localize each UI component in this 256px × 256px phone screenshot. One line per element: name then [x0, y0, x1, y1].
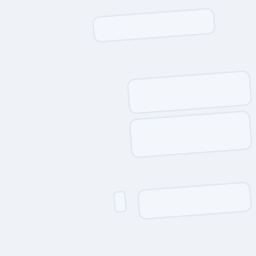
button[interactable]: Message 3 — [130, 120, 250, 158]
button[interactable]: Message 4 — [133, 191, 245, 220]
button[interactable]: Message 1 — [101, 15, 222, 40]
button[interactable]: Sender — [109, 191, 120, 211]
button[interactable]: Message 2 — [131, 80, 253, 114]
